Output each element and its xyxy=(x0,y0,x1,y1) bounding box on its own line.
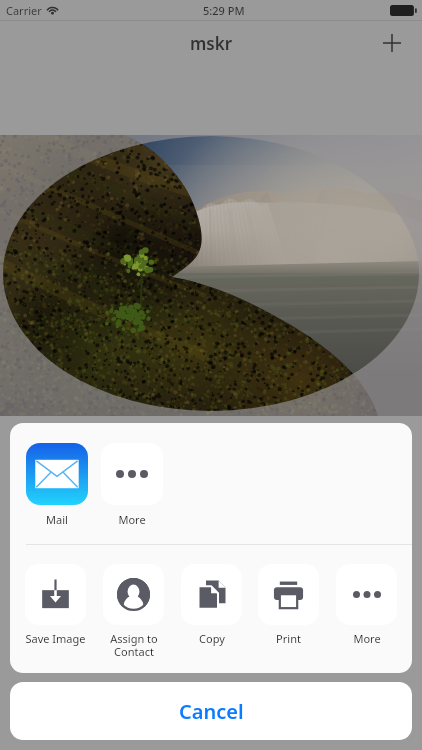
button[interactable]: Add xyxy=(370,21,414,65)
button[interactable]: Cancel xyxy=(10,682,412,740)
staticText: Cancel xyxy=(179,698,244,725)
staticText: More xyxy=(353,631,381,646)
staticText: Print xyxy=(276,631,301,646)
staticText: Mail xyxy=(46,512,68,527)
staticText: Assign to Contact xyxy=(110,631,158,659)
staticText: Carrier xyxy=(6,3,42,18)
button[interactable]: More xyxy=(100,443,163,527)
button[interactable]: Print xyxy=(258,564,319,646)
button[interactable]: Copy xyxy=(181,564,242,646)
staticText: More xyxy=(118,512,146,527)
staticText: Save Image xyxy=(25,631,86,646)
button[interactable]: Save Image xyxy=(25,564,86,646)
staticText: 5:29 PM xyxy=(203,3,245,18)
button[interactable]: Mail xyxy=(25,443,88,527)
button[interactable]: More xyxy=(336,564,397,646)
staticText: Copy xyxy=(199,631,225,646)
staticText: mskr xyxy=(190,32,233,55)
button[interactable]: Assign to Contact xyxy=(103,564,164,659)
